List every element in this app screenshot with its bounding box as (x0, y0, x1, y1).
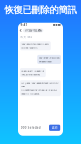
staticText: Your one-time code is 4821. (21, 42, 49, 46)
staticText: $48.20 was posted. (21, 73, 40, 76)
staticText: Your order #5512 has (39, 56, 60, 59)
staticText: is confirmed for Friday at 2:30 PM. (21, 88, 57, 91)
button[interactable]: Back (20, 29, 22, 32)
staticText: 恢復已刪除的簡訊 (4, 4, 76, 16)
staticText: 還原 (52, 126, 58, 130)
staticText: +1 (555) 012-3456 (25, 29, 42, 32)
button[interactable]: 還原 (49, 125, 60, 131)
staticText: 000 Selected (21, 126, 41, 130)
staticText: 昨天 09:41 (20, 35, 32, 39)
staticText: Bank alert: a debit of (21, 69, 44, 72)
staticText: Do not share it. (21, 46, 38, 49)
staticText: Reply C to cancel. (21, 92, 40, 95)
staticText: shipped today. (39, 60, 53, 63)
staticText: Hi Jane! Your appointment with Dr. Lee (21, 81, 59, 88)
staticText: 9:41 (20, 23, 27, 27)
